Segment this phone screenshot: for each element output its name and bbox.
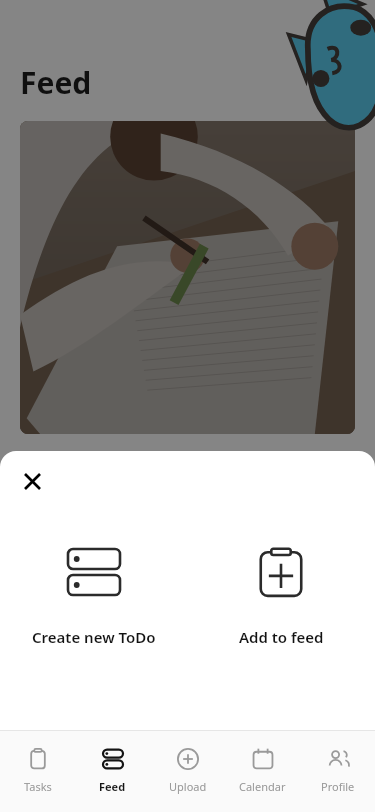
staticText: Feed [20,62,92,103]
staticText: Profile [321,779,355,794]
button[interactable]: Profile [300,731,375,812]
staticText: Upload [169,779,207,794]
button[interactable]: Add to feed [187,543,375,647]
button[interactable]: Calendar [225,731,300,812]
staticText: Calendar [239,779,286,794]
staticText: Add to feed [239,627,324,647]
button[interactable]: Tasks [0,731,75,812]
button[interactable]: Create new ToDo [0,543,187,647]
button[interactable]: Close [16,465,48,497]
staticText: Create new ToDo [32,627,156,647]
button[interactable]: Feed [75,731,150,812]
staticText: Feed [99,779,126,794]
button[interactable]: Upload [150,731,225,812]
staticText: Tasks [24,779,52,794]
